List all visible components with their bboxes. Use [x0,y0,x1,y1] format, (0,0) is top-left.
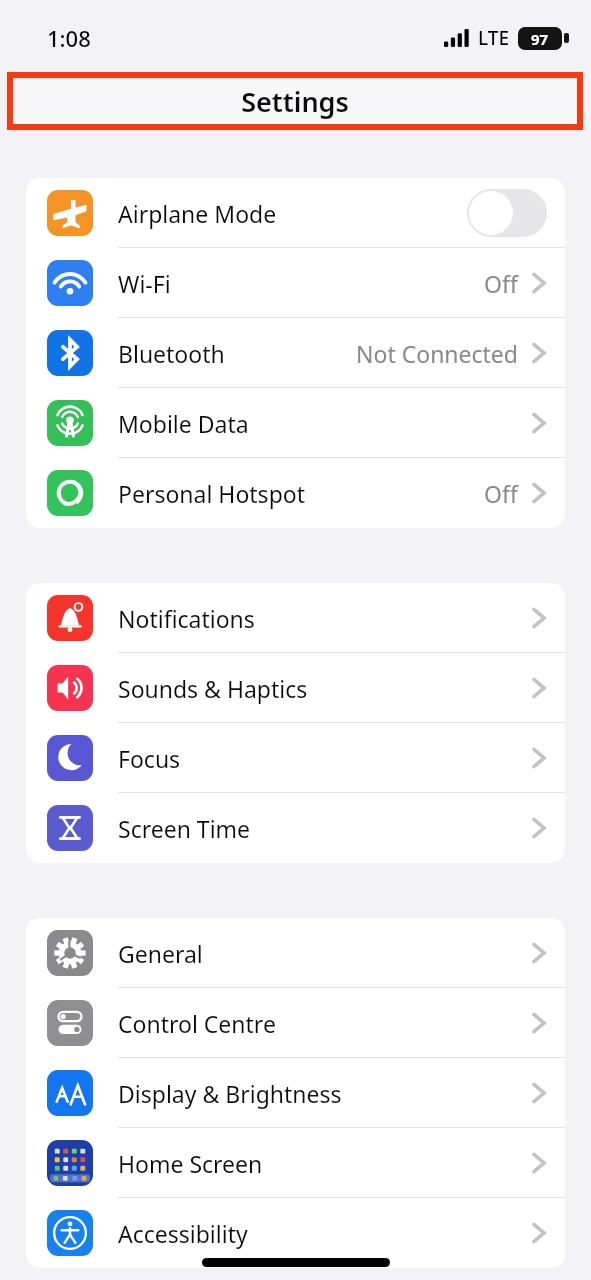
staticText: Settings [241,83,349,120]
button[interactable]: Display & Brightness [26,1058,565,1128]
button[interactable]: Notifications [26,583,565,653]
staticText: 1:08 [47,23,91,53]
button[interactable]: Sounds & Haptics [26,653,565,723]
staticText: General [118,938,203,969]
staticText: Off [484,478,518,509]
staticText: Accessibility [118,1218,248,1249]
staticText: Home Screen [118,1148,263,1179]
button[interactable]: Home Screen [26,1128,565,1198]
button[interactable]: Mobile Data [26,388,565,458]
staticText: Bluetooth [118,338,225,369]
button[interactable]: Personal Hotspot [26,458,565,528]
staticText: Focus [118,743,181,774]
staticText: Mobile Data [118,408,249,439]
staticText: Not Connected [356,338,518,369]
button[interactable]: Settings [13,78,577,124]
button[interactable]: Wi-Fi [26,248,565,318]
staticText: Wi-Fi [118,268,171,299]
button[interactable]: Airplane Mode [26,178,565,248]
button[interactable]: Airplane Mode toggle, off [467,189,547,237]
staticText: Personal Hotspot [118,478,305,509]
button[interactable]: General [26,918,565,988]
staticText: Sounds & Haptics [118,673,308,704]
staticText: Off [484,268,518,299]
button[interactable]: Control Centre [26,988,565,1058]
staticText: 97 [531,29,549,49]
button[interactable]: Screen Time [26,793,565,863]
button[interactable]: Focus [26,723,565,793]
button[interactable]: Bluetooth [26,318,565,388]
staticText: LTE [478,25,510,51]
staticText: Airplane Mode [118,198,277,229]
staticText: Notifications [118,603,255,634]
button[interactable]: Accessibility [26,1198,565,1268]
staticText: Display & Brightness [118,1078,342,1109]
staticText: Screen Time [118,813,251,844]
staticText: Control Centre [118,1008,276,1039]
